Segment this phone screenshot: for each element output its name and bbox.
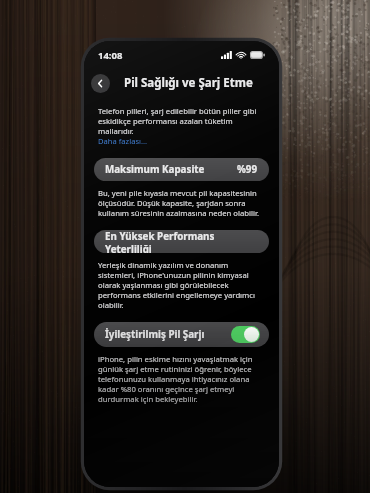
button[interactable]: İyileştirilmiş Pil Şarjı açık [231,326,260,343]
button[interactable]: Maksimum Kapasite [94,158,269,181]
staticText: Bu, yeni pile kıyasla mevcut pil kapasit… [98,188,265,218]
staticText: Daha fazlası... [98,136,148,146]
staticText: Maksimum Kapasite [105,163,205,176]
staticText: Yerleşik dinamik yazılım ve donanım sist… [98,260,265,310]
button[interactable]: İyileştirilmiş Pil Şarjı [94,322,269,347]
staticText: %99 [237,163,258,176]
button[interactable]: Daha fazlası... [98,136,148,146]
staticText: En Yüksek Performans Yeterliliği [105,230,258,253]
button[interactable]: En Yüksek Performans Yeterliliği [94,230,269,253]
staticText: Telefon pilleri, şarj edilebilir bütün p… [98,106,265,136]
staticText: iPhone, pilin eskime hızını yavaşlatmak … [98,354,265,404]
button[interactable]: Back [91,74,110,93]
staticText: Pil Sağlığı ve Şarj Etme [124,75,253,91]
staticText: 14:08 [98,49,123,62]
staticText: İyileştirilmiş Pil Şarjı [105,328,205,341]
